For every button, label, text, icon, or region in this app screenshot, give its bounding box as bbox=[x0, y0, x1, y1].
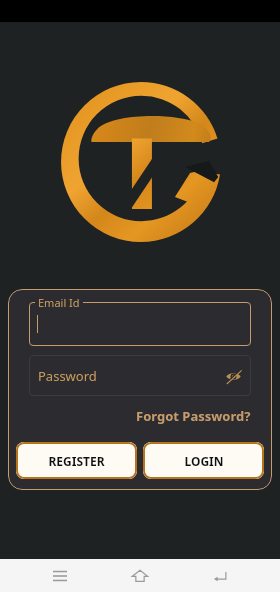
button[interactable]: Password bbox=[29, 355, 251, 396]
button[interactable] bbox=[29, 302, 251, 346]
button[interactable]: Toggle password visibility bbox=[221, 364, 245, 388]
button[interactable]: REGISTER bbox=[16, 442, 137, 479]
staticText: Email Id bbox=[38, 295, 80, 310]
button[interactable]: Home bbox=[126, 562, 154, 590]
button[interactable]: Back bbox=[206, 562, 234, 590]
button[interactable]: LOGIN bbox=[143, 442, 264, 479]
staticText: LOGIN bbox=[184, 453, 224, 469]
button[interactable]: Forgot Password? bbox=[132, 406, 251, 425]
staticText: Forgot Password? bbox=[136, 407, 251, 425]
staticText: REGISTER bbox=[48, 453, 105, 469]
staticText: Password bbox=[38, 367, 97, 385]
button[interactable]: Recent apps bbox=[46, 562, 74, 590]
